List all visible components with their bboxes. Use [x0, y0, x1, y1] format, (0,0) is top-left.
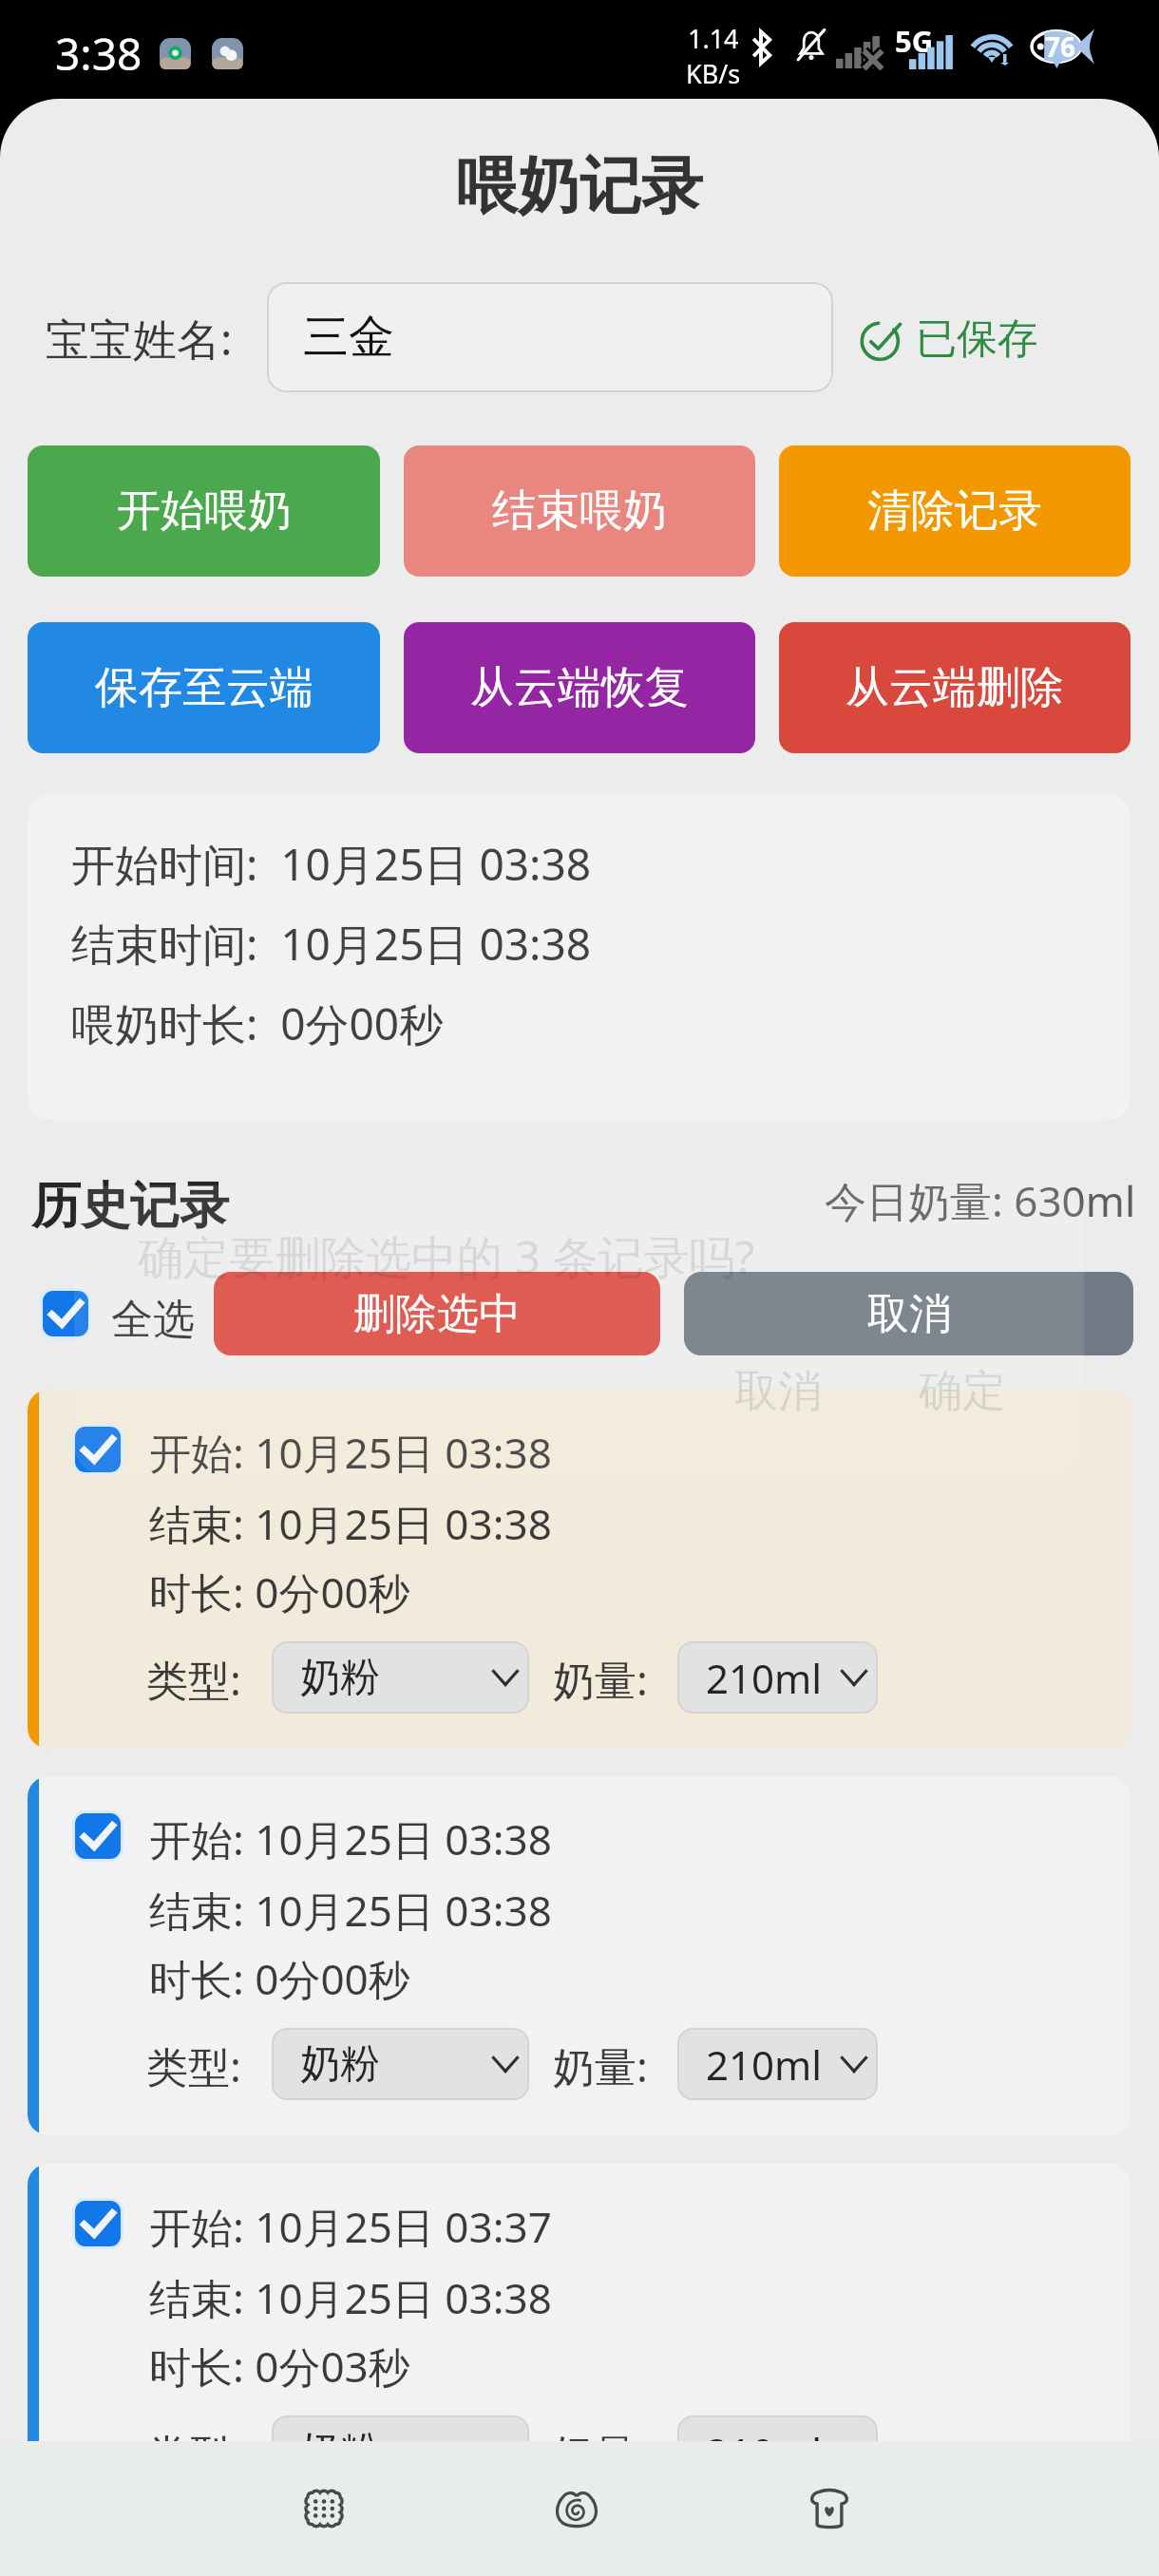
- button[interactable]: 从云端恢复: [404, 622, 755, 753]
- staticText: 开始: 10月25日 03:38: [149, 1810, 552, 1867]
- staticText: 取消: [734, 1364, 822, 1419]
- button[interactable]: 确定: [919, 1364, 1006, 1419]
- button[interactable]: 开始: 10月25日 03:37: [28, 2164, 1130, 2523]
- staticText: 类型:: [146, 2425, 241, 2482]
- button[interactable]: Recent apps: [767, 2441, 892, 2576]
- button[interactable]: Back: [261, 2441, 387, 2576]
- staticText: 时长: 0分00秒: [149, 1950, 410, 2007]
- staticText: 结束喂奶: [492, 483, 667, 539]
- staticText: 删除选中: [353, 1288, 521, 1340]
- staticText: 结束时间: 10月25日 03:38: [71, 914, 592, 974]
- button[interactable]: 取消: [684, 1272, 1133, 1355]
- staticText: 取消: [867, 1288, 951, 1340]
- staticText: 三金: [303, 309, 394, 366]
- button[interactable]: 奶粉: [272, 1641, 529, 1714]
- staticText: 开始喂奶: [117, 483, 292, 539]
- button[interactable]: 210ml: [677, 2028, 878, 2100]
- staticText: 全选: [111, 1294, 195, 1346]
- button[interactable]: 210ml: [677, 1641, 878, 1714]
- staticText: 奶粉: [300, 1653, 380, 1703]
- staticText: 历史记录: [31, 1175, 229, 1238]
- staticText: 确定要删除选中的 3 条记录吗?: [138, 1225, 755, 1288]
- button[interactable]: 保存至云端: [28, 622, 380, 753]
- staticText: 已保存: [916, 313, 1038, 365]
- staticText: 结束: 10月25日 03:38: [149, 2269, 552, 2326]
- button[interactable]: 删除选中: [214, 1272, 660, 1355]
- staticText: 开始: 10月25日 03:38: [149, 1424, 552, 1481]
- staticText: 今日奶量: 630ml: [825, 1172, 1136, 1229]
- button[interactable]: 开始: 10月25日 03:38: [28, 1390, 1130, 1749]
- staticText: 喂奶时长: 0分00秒: [71, 994, 444, 1053]
- staticText: 时长: 0分00秒: [149, 1563, 410, 1620]
- staticText: 76: [1045, 28, 1076, 65]
- staticText: 210ml: [706, 2037, 823, 2092]
- button[interactable]: 奶粉: [272, 2415, 529, 2488]
- staticText: 保存至云端: [95, 660, 313, 715]
- staticText: 开始: 10月25日 03:37: [149, 2198, 552, 2255]
- button[interactable]: 清除记录: [779, 445, 1130, 577]
- button[interactable]: 三金: [267, 282, 833, 392]
- staticText: 类型:: [146, 1651, 241, 1708]
- staticText: 确定: [919, 1364, 1006, 1419]
- button[interactable]: 210ml: [677, 2415, 878, 2488]
- staticText: 5G: [895, 21, 934, 61]
- staticText: 喂奶记录: [456, 147, 703, 225]
- staticText: 1.14: [688, 21, 739, 56]
- staticText: KB/s: [686, 56, 741, 91]
- staticText: 清除记录: [867, 483, 1042, 539]
- button[interactable]: 从云端删除: [779, 622, 1130, 753]
- button[interactable]: 开始喂奶: [28, 445, 380, 577]
- staticText: 结束: 10月25日 03:38: [149, 1882, 552, 1939]
- staticText: 开始时间: 10月25日 03:38: [71, 834, 592, 894]
- button[interactable]: 开始: 10月25日 03:38: [28, 1776, 1130, 2135]
- button[interactable]: 结束喂奶: [404, 445, 755, 577]
- staticText: 结束: 10月25日 03:38: [149, 1495, 552, 1552]
- staticText: 210ml: [706, 1651, 823, 1705]
- staticText: 3:38: [55, 24, 142, 84]
- button[interactable]: 奶粉: [272, 2028, 529, 2100]
- staticText: 210ml: [706, 2425, 823, 2479]
- button[interactable]: 已保存: [855, 313, 1038, 366]
- button[interactable]: 取消: [734, 1364, 822, 1419]
- staticText: 从云端删除: [845, 660, 1064, 715]
- staticText: 奶量:: [553, 1651, 648, 1708]
- staticText: 时长: 0分03秒: [149, 2338, 410, 2395]
- staticText: 奶量:: [553, 2037, 648, 2094]
- staticText: 类型:: [146, 2037, 241, 2094]
- button[interactable]: Home: [514, 2441, 639, 2576]
- staticText: 奶量:: [553, 2425, 648, 2482]
- staticText: 奶粉: [300, 2039, 380, 2090]
- staticText: 宝宝姓名:: [46, 309, 233, 369]
- staticText: 从云端恢复: [470, 660, 689, 715]
- staticText: 奶粉: [300, 2427, 380, 2477]
